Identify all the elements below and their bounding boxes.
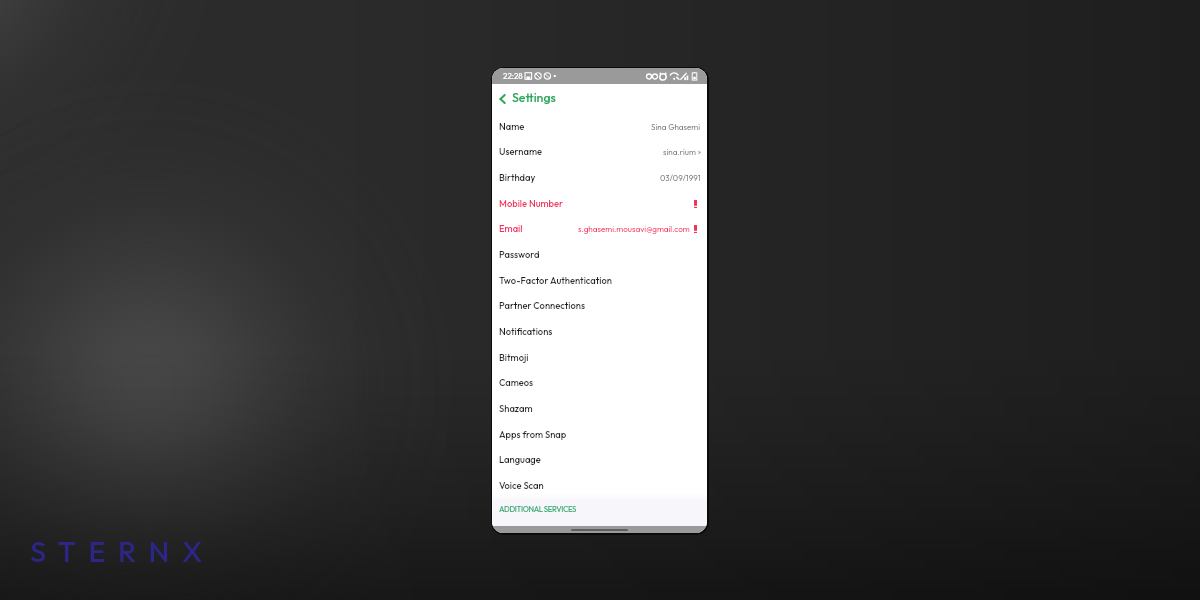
staticText: Username [499,146,543,158]
staticText: Settings [512,90,556,106]
button[interactable]: Bitmoji [492,345,707,371]
staticText: 22:28 [503,71,523,81]
button[interactable]: Partner Connections [492,293,707,319]
staticText: Cameos [499,377,534,389]
button[interactable]: Username [492,139,707,165]
staticText: Voice Scan [499,480,544,492]
button[interactable]: Two-Factor Authentication [492,268,707,294]
staticText: ADDITIONAL SERVICES [499,504,577,514]
staticText: Shazam [499,403,533,415]
staticText: Notifications [499,326,553,338]
button[interactable]: Mobile Number [492,191,707,217]
staticText: Partner Connections [499,300,586,312]
staticText: Email [499,223,523,235]
staticText: Apps from Snap [499,429,567,441]
staticText: Sina Ghasemi [651,122,701,132]
staticText: Birthday [499,172,536,184]
button[interactable]: Notifications [492,319,707,345]
staticText: s.ghasemi.mousavi@gmail.com [578,224,690,234]
button[interactable]: Birthday [492,165,707,191]
button[interactable]: Password [492,242,707,268]
button[interactable]: Language [492,447,707,473]
button[interactable]: Email [492,216,707,242]
staticText: Bitmoji [499,352,529,364]
button[interactable]: Back [496,92,509,108]
staticText: 03/09/1991 [660,173,701,183]
button[interactable]: Cameos [492,370,707,396]
staticText: Language [499,454,541,466]
button[interactable]: Shazam [492,396,707,422]
staticText: STERNX [30,533,215,570]
staticText: Name [499,121,525,133]
button[interactable]: Apps from Snap [492,422,707,448]
button[interactable]: Voice Scan [492,473,707,499]
staticText: Mobile Number [499,198,564,210]
staticText: sina.rium [663,147,696,157]
staticText: Two-Factor Authentication [499,275,613,287]
button[interactable]: ADDITIONAL SERVICES [492,493,707,526]
button[interactable]: Name [492,114,707,140]
staticText: Password [499,249,540,261]
